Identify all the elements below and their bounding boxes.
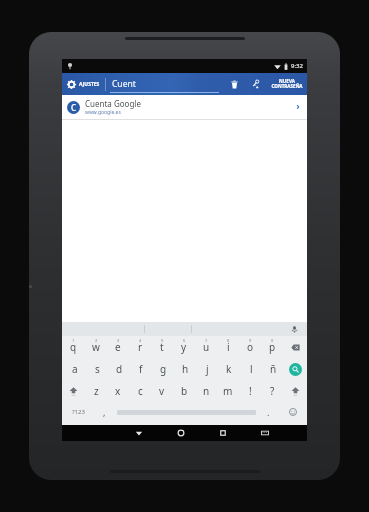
button[interactable]: Cuent bbox=[106, 73, 223, 95]
button[interactable]: k bbox=[218, 358, 240, 380]
button[interactable]: 4 bbox=[129, 336, 151, 358]
staticText: o bbox=[247, 340, 254, 354]
button[interactable]: 5 bbox=[151, 336, 173, 358]
button[interactable]: Teclado bbox=[244, 425, 286, 441]
staticText: q bbox=[70, 340, 77, 354]
staticText: AJUSTES bbox=[79, 81, 100, 88]
staticText: 9 bbox=[249, 338, 252, 343]
button[interactable]: z bbox=[85, 380, 107, 402]
button[interactable]: 8 bbox=[217, 336, 239, 358]
staticText: v bbox=[159, 384, 165, 398]
staticText: 6 bbox=[183, 338, 186, 343]
button[interactable]: AJUSTES bbox=[62, 73, 105, 95]
button[interactable]: ? bbox=[261, 380, 283, 402]
button[interactable]: 9 bbox=[239, 336, 261, 358]
button[interactable]: Añadir contraseña bbox=[245, 73, 267, 95]
button[interactable]: Emoji bbox=[279, 402, 307, 422]
staticText: 9:32 bbox=[291, 62, 303, 70]
button[interactable]: Recientes bbox=[202, 425, 244, 441]
staticText: e bbox=[115, 340, 121, 354]
button[interactable]: 3 bbox=[107, 336, 129, 358]
staticText: , bbox=[103, 406, 106, 418]
button[interactable]: ?123 bbox=[62, 402, 94, 422]
staticText: x bbox=[115, 384, 121, 398]
button[interactable]: Mayúsculas bbox=[62, 380, 85, 402]
staticText: u bbox=[203, 340, 210, 354]
button[interactable]: 6 bbox=[173, 336, 195, 358]
button[interactable]: v bbox=[151, 380, 173, 402]
button[interactable]: l bbox=[240, 358, 262, 380]
button[interactable]: 1 bbox=[62, 336, 85, 358]
button[interactable]: c bbox=[129, 380, 151, 402]
staticText: 1 bbox=[72, 338, 75, 343]
button[interactable]: NUEVA CONTRASEÑA bbox=[267, 73, 307, 95]
button[interactable]: b bbox=[173, 380, 195, 402]
button[interactable]: , bbox=[94, 402, 115, 422]
button[interactable]: Eliminar bbox=[223, 73, 245, 95]
button[interactable]: x bbox=[107, 380, 129, 402]
staticText: m bbox=[223, 384, 233, 398]
staticText: ?123 bbox=[72, 408, 85, 416]
staticText: n bbox=[203, 384, 210, 398]
staticText: Cuenta Google bbox=[85, 98, 141, 109]
staticText: 5 bbox=[161, 338, 164, 343]
button[interactable]: Mayúsculas bbox=[283, 380, 307, 402]
staticText: h bbox=[182, 362, 189, 376]
button[interactable]: Espacio bbox=[115, 402, 258, 422]
button[interactable]: . bbox=[258, 402, 279, 422]
button[interactable]: ñ bbox=[262, 358, 284, 380]
button[interactable]: h bbox=[174, 358, 196, 380]
staticText: 0 bbox=[271, 338, 274, 343]
staticText: i bbox=[227, 340, 230, 354]
staticText: g bbox=[160, 362, 167, 376]
button[interactable]: Dictado por voz bbox=[288, 323, 300, 335]
staticText: www.google.es bbox=[85, 109, 121, 116]
staticText: t bbox=[160, 340, 164, 354]
staticText: 4 bbox=[139, 338, 142, 343]
staticText: j bbox=[206, 362, 209, 376]
button[interactable]: ! bbox=[239, 380, 261, 402]
staticText: ñ bbox=[270, 362, 277, 376]
staticText: C bbox=[71, 102, 77, 113]
button[interactable]: 7 bbox=[195, 336, 217, 358]
staticText: ? bbox=[270, 384, 275, 398]
button[interactable]: m bbox=[217, 380, 239, 402]
button[interactable]: a bbox=[64, 358, 86, 380]
staticText: NUEVA CONTRASEÑA bbox=[271, 78, 303, 90]
button[interactable]: f bbox=[130, 358, 152, 380]
button[interactable]: j bbox=[196, 358, 218, 380]
staticText: 7 bbox=[205, 338, 208, 343]
button[interactable]: Borrar bbox=[283, 336, 307, 358]
staticText: w bbox=[92, 340, 100, 354]
staticText: f bbox=[139, 362, 143, 376]
button[interactable]: C bbox=[62, 95, 307, 119]
staticText: 3 bbox=[117, 338, 120, 343]
staticText: a bbox=[72, 362, 78, 376]
staticText: s bbox=[95, 362, 100, 376]
button[interactable]: Buscar bbox=[284, 358, 307, 380]
staticText: 2 bbox=[95, 338, 98, 343]
staticText: Cuent bbox=[112, 78, 136, 90]
staticText: l bbox=[250, 362, 253, 376]
button[interactable]: Inicio bbox=[160, 425, 202, 441]
staticText: b bbox=[181, 384, 188, 398]
staticText: z bbox=[94, 384, 99, 398]
staticText: y bbox=[181, 340, 187, 354]
staticText: p bbox=[269, 340, 276, 354]
staticText: k bbox=[226, 362, 232, 376]
staticText: 8 bbox=[227, 338, 230, 343]
staticText: r bbox=[138, 340, 143, 354]
button[interactable]: g bbox=[152, 358, 174, 380]
staticText: ! bbox=[249, 384, 252, 398]
staticText: c bbox=[138, 384, 143, 398]
staticText: d bbox=[116, 362, 123, 376]
button[interactable]: d bbox=[108, 358, 130, 380]
button[interactable]: n bbox=[195, 380, 217, 402]
button[interactable]: 0 bbox=[261, 336, 283, 358]
button[interactable]: s bbox=[86, 358, 108, 380]
button[interactable]: 2 bbox=[85, 336, 107, 358]
staticText: . bbox=[267, 406, 270, 418]
button[interactable]: Atrás bbox=[118, 425, 160, 441]
